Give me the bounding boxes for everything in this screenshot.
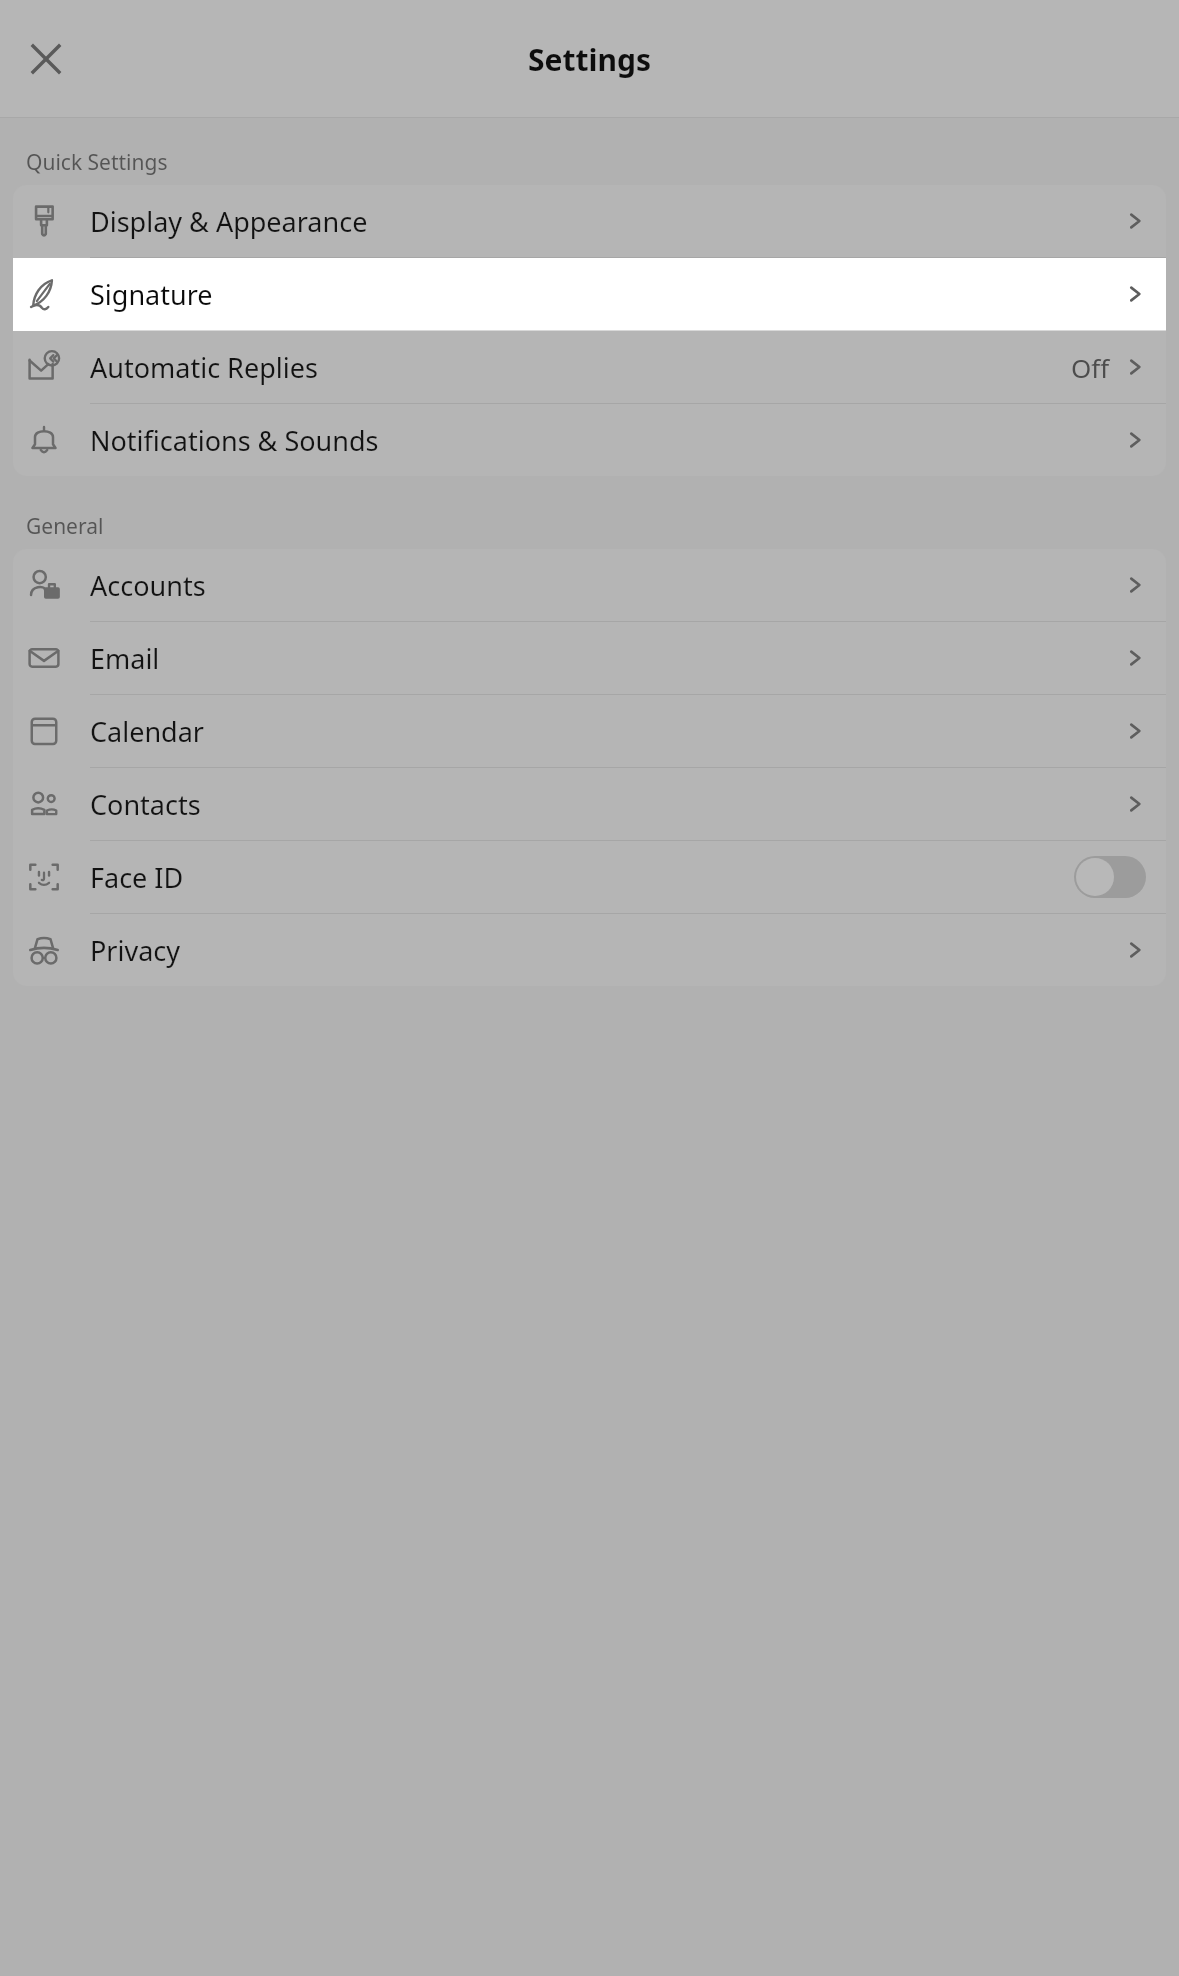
button[interactable]: Display & Appearance bbox=[13, 185, 1166, 258]
button[interactable]: Close bbox=[18, 31, 74, 87]
staticText: Off bbox=[1071, 350, 1110, 385]
staticText: Privacy bbox=[90, 932, 181, 969]
staticText: Signature bbox=[90, 276, 213, 313]
staticText: Display & Appearance bbox=[90, 203, 368, 240]
staticText: Automatic Replies bbox=[90, 349, 318, 386]
button[interactable]: Privacy bbox=[13, 914, 1166, 986]
button[interactable]: Face ID bbox=[13, 841, 1166, 914]
button[interactable]: Automatic Replies bbox=[13, 331, 1166, 404]
button[interactable]: Calendar bbox=[13, 695, 1166, 768]
staticText: Contacts bbox=[90, 786, 201, 823]
staticText: Email bbox=[90, 640, 160, 677]
button[interactable]: Face ID toggle bbox=[1074, 856, 1146, 898]
button[interactable]: Contacts bbox=[13, 768, 1166, 841]
staticText: Notifications & Sounds bbox=[90, 422, 379, 459]
button[interactable]: Accounts bbox=[13, 549, 1166, 622]
staticText: Accounts bbox=[90, 567, 206, 604]
staticText: Quick Settings bbox=[26, 148, 168, 177]
staticText: Face ID bbox=[90, 859, 184, 896]
button[interactable]: Signature bbox=[13, 258, 1166, 331]
staticText: Settings bbox=[528, 39, 651, 80]
staticText: Calendar bbox=[90, 713, 204, 750]
button[interactable]: Notifications & Sounds bbox=[13, 404, 1166, 476]
staticText: General bbox=[26, 512, 104, 541]
button[interactable]: Email bbox=[13, 622, 1166, 695]
